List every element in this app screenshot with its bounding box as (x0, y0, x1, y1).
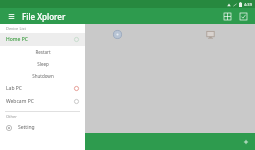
button[interactable]: Monitor (203, 27, 217, 41)
staticText: Other (6, 114, 17, 119)
staticText: 4:39 (244, 2, 252, 7)
button[interactable]: Open navigation menu (5, 10, 17, 22)
staticText: File Xplorer (22, 11, 66, 22)
staticText: Device List (6, 26, 26, 31)
staticText: Lab PC (6, 85, 22, 92)
button[interactable]: Grid view (220, 9, 234, 23)
button[interactable]: Setting (0, 121, 85, 134)
button[interactable]: Sleep (0, 58, 85, 70)
staticText: Shutdown (32, 73, 54, 79)
staticText: Sleep (37, 61, 49, 67)
staticText: Home PC (6, 36, 28, 43)
button[interactable]: Shutdown (0, 70, 85, 82)
button[interactable]: Webcam PC (0, 95, 85, 108)
staticText: Setting (18, 124, 35, 131)
staticText: Webcam PC (6, 98, 34, 105)
button[interactable]: Select all (236, 9, 250, 23)
button[interactable]: Restart (0, 46, 85, 58)
button[interactable]: Add (241, 137, 251, 147)
button[interactable]: Lab PC (0, 82, 85, 95)
staticText: Restart (35, 49, 51, 55)
button[interactable]: Home PC (0, 33, 85, 46)
button[interactable]: Local disk (110, 27, 124, 41)
